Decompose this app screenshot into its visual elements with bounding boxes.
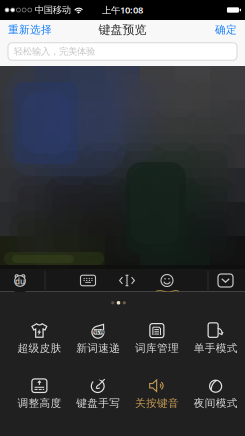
button[interactable]: 关按键音 [127, 377, 186, 410]
button[interactable]: 键盘手写 [69, 377, 128, 410]
button[interactable]: 调整高度 [10, 377, 69, 410]
button[interactable]: 输入框 [8, 43, 237, 60]
button[interactable]: 单手模式 [186, 322, 245, 355]
staticText: 新词速递 [76, 342, 120, 355]
staticText: 确定 [215, 23, 237, 36]
button[interactable]: 重新选择 [8, 23, 52, 36]
button[interactable]: 表情 [160, 273, 174, 287]
button[interactable]: 超级皮肤 [10, 322, 69, 355]
staticText: 键盘预览 [98, 22, 146, 37]
staticText: 重新选择 [8, 23, 52, 36]
staticText: du [15, 276, 25, 287]
button[interactable]: 键盘 [79, 273, 97, 287]
button[interactable]: 收起键盘 [217, 273, 234, 288]
button[interactable]: 词库管理 [127, 322, 186, 355]
button[interactable]: 夜间模式 [186, 377, 245, 410]
staticText: 关按键音 [135, 397, 179, 410]
staticText: 上午10:08 [102, 4, 143, 16]
staticText: 调整高度 [17, 397, 61, 410]
staticText: 轻松输入，完美体验 [14, 46, 95, 57]
staticText: 键盘手写 [76, 397, 120, 410]
staticText: 超级皮肤 [17, 342, 61, 355]
staticText: 中国移动 [35, 4, 71, 16]
staticText: 夜间模式 [194, 397, 238, 410]
button[interactable]: 光标 [119, 274, 135, 286]
button[interactable]: 确定 [215, 23, 237, 36]
button[interactable]: 百度输入法 [8, 270, 32, 290]
staticText: 词库管理 [135, 342, 179, 355]
staticText: 单手模式 [194, 342, 238, 355]
button[interactable]: 新词速递 [69, 322, 128, 355]
staticText: NEW [92, 328, 104, 335]
